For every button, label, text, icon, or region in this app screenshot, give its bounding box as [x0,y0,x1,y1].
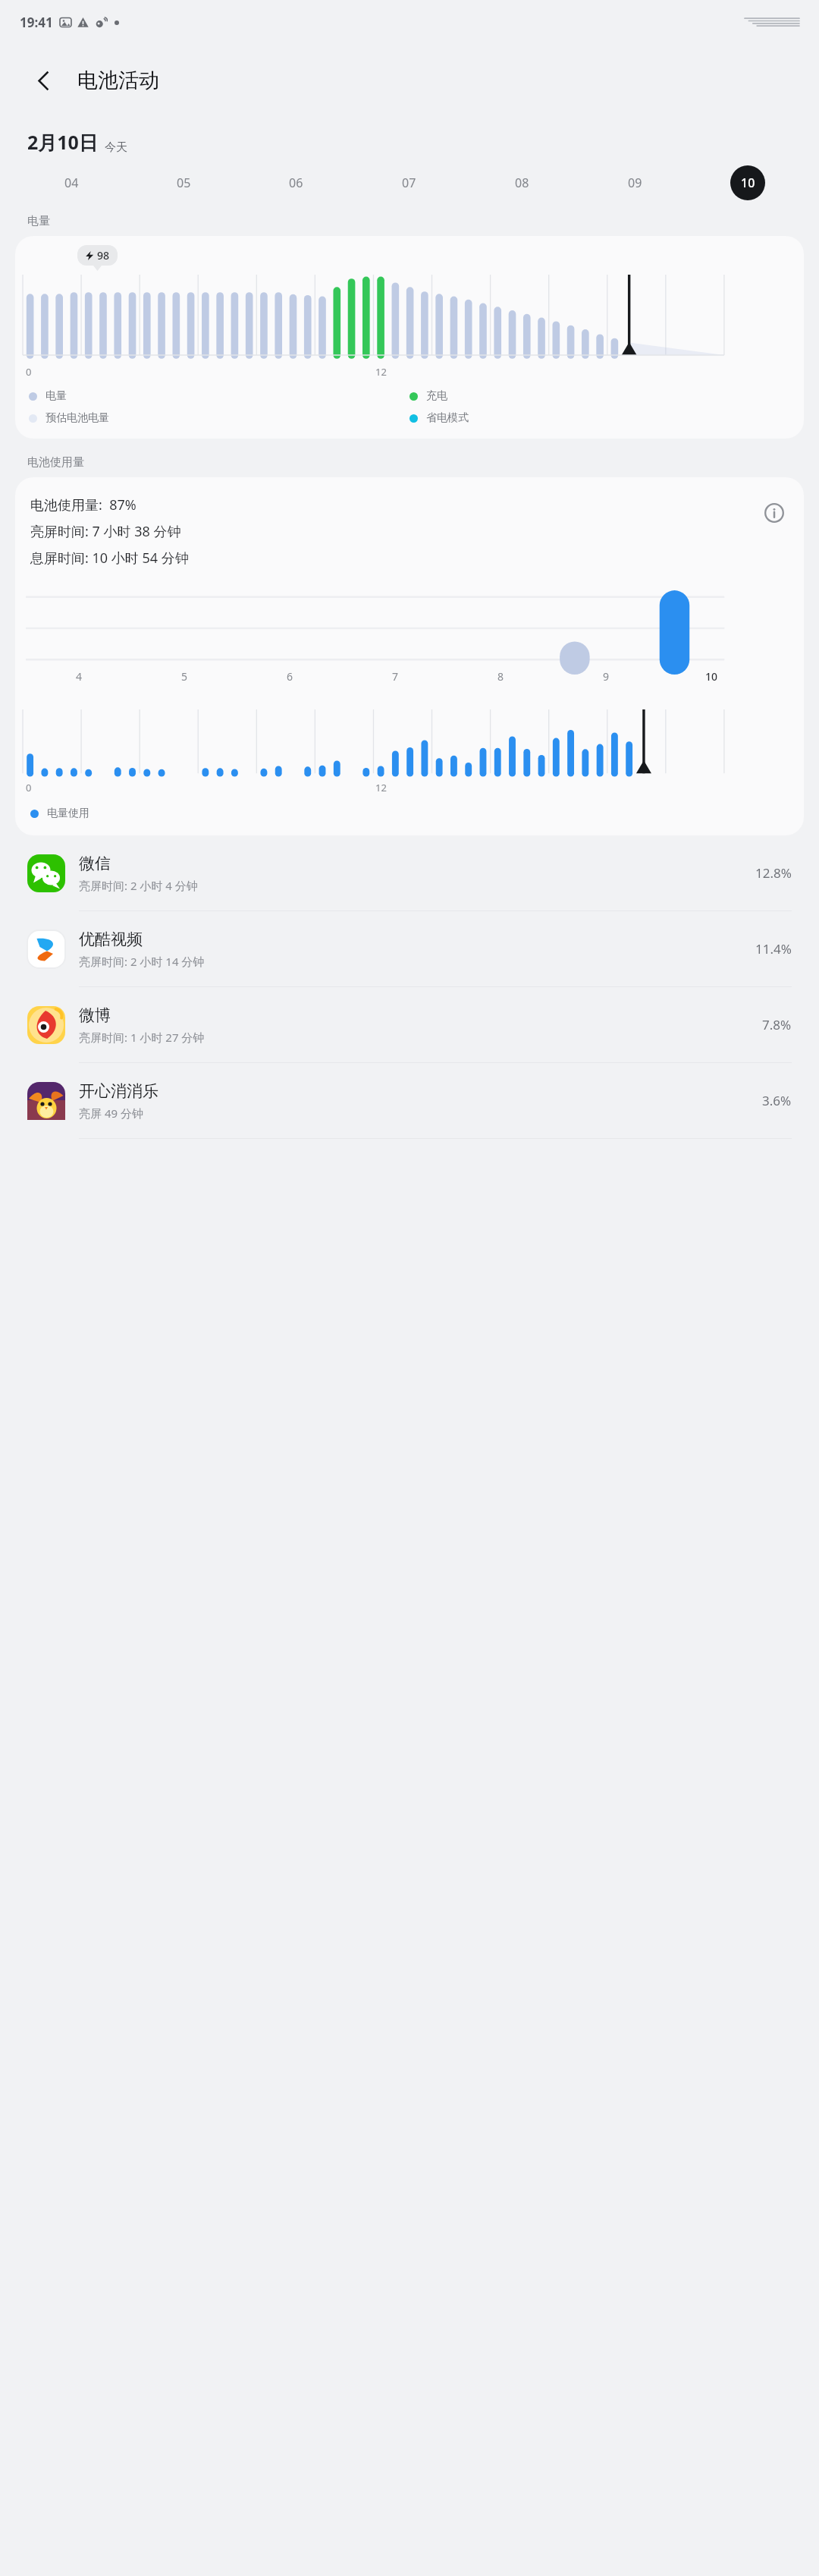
staticText: 亮屏时间: 7 小时 38 分钟 [30,522,181,541]
staticText: 12 [375,365,387,379]
staticText: 5 [181,669,188,684]
staticText: 7.8% [762,1016,792,1033]
staticText: 息屏时间: 10 小时 54 分钟 [30,549,189,568]
staticText: 3.6% [762,1092,792,1109]
staticText: 0 [26,781,32,794]
button[interactable]: 09 [617,165,652,200]
staticText: 电池使用量: 87% [30,495,136,514]
staticText: 亮屏时间: 2 小时 14 分钟 [79,954,205,969]
button[interactable]: 98 [15,236,804,439]
staticText: 4 [76,669,83,684]
button[interactable]: 开心消消乐 [0,1063,819,1138]
staticText: 电池活动 [77,68,159,93]
staticText: 省电模式 [426,411,469,425]
staticText: 电量 [45,389,67,403]
button[interactable]: Info [757,495,792,530]
staticText: 06 [289,175,303,191]
staticText: 0 [26,365,32,379]
button[interactable]: 10 [730,165,765,200]
button[interactable]: 微博 [0,987,819,1062]
button[interactable]: 06 [278,165,313,200]
staticText: 12 [375,781,387,794]
staticText: 6 [287,669,293,684]
staticText: 08 [515,175,529,191]
staticText: 9 [603,669,610,684]
staticText: 电量 [27,214,50,228]
staticText: 7 [392,669,399,684]
button[interactable]: 04 [54,165,89,200]
button[interactable]: Back [21,58,65,102]
staticText: 8 [497,669,504,684]
staticText: 10 [705,669,718,684]
button[interactable]: 微信 [0,835,819,911]
button[interactable]: 05 [166,165,201,200]
button[interactable]: 08 [504,165,539,200]
staticText: 充电 [426,389,447,403]
staticText: 98 [97,248,110,263]
staticText: 微博 [79,1005,111,1025]
staticText: 微信 [79,854,111,873]
staticText: 09 [628,175,642,191]
staticText: 10 [741,175,755,191]
staticText: 2月10日 [27,129,98,155]
staticText: 04 [64,175,79,191]
staticText: 亮屏时间: 1 小时 27 分钟 [79,1030,205,1045]
staticText: 今天 [105,140,127,155]
staticText: 开心消消乐 [79,1081,158,1101]
staticText: 12.8% [755,864,792,882]
button[interactable]: 优酷视频 [0,911,819,986]
button[interactable]: 07 [391,165,426,200]
staticText: 预估电池电量 [45,411,109,425]
staticText: 11.4% [755,940,792,958]
staticText: 亮屏 49 分钟 [79,1106,143,1121]
staticText: 05 [177,175,191,191]
staticText: 电量使用 [47,807,89,820]
staticText: 优酷视频 [79,929,143,949]
staticText: 亮屏时间: 2 小时 4 分钟 [79,878,198,893]
staticText: 07 [402,175,416,191]
staticText: 电池使用量 [27,455,84,470]
staticText: 19:41 [20,14,53,31]
